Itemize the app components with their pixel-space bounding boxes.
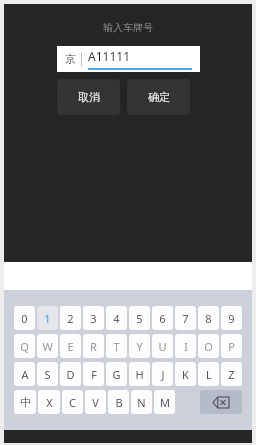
button[interactable]: 中 — [14, 390, 36, 414]
button[interactable]: E — [60, 334, 81, 358]
staticText: P — [228, 339, 235, 354]
button[interactable]: 7 — [175, 306, 196, 330]
staticText: L — [206, 367, 212, 382]
staticText: S — [44, 367, 51, 382]
button[interactable]: T — [106, 334, 127, 358]
staticText: 输入车牌号 — [103, 21, 153, 34]
staticText: E — [67, 339, 74, 354]
staticText: 确定 — [148, 90, 170, 104]
staticText: H — [135, 367, 144, 382]
staticText: V — [92, 395, 99, 410]
staticText: Y — [136, 339, 143, 354]
button[interactable]: 6 — [152, 306, 173, 330]
staticText: 9 — [228, 311, 235, 326]
button[interactable]: 4 — [106, 306, 127, 330]
staticText: 2 — [67, 311, 74, 326]
button[interactable]: 3 — [83, 306, 104, 330]
staticText: 1 — [44, 311, 51, 326]
button[interactable]: W — [37, 334, 58, 358]
button[interactable]: I — [175, 334, 196, 358]
button[interactable]: K — [175, 362, 196, 386]
staticText: C — [69, 395, 76, 410]
button[interactable]: M — [154, 390, 175, 414]
staticText: I — [184, 339, 188, 354]
staticText: R — [90, 339, 97, 354]
staticText: 5 — [136, 311, 143, 326]
button[interactable]: J — [152, 362, 173, 386]
button[interactable]: G — [106, 362, 127, 386]
button[interactable]: P — [221, 334, 242, 358]
staticText: 4 — [113, 311, 120, 326]
staticText: M — [160, 395, 170, 410]
staticText: T — [113, 339, 120, 354]
staticText: Z — [228, 367, 235, 382]
button[interactable]: N — [131, 390, 152, 414]
staticText: D — [66, 367, 75, 382]
staticText: 0 — [21, 311, 28, 326]
button[interactable]: C — [62, 390, 83, 414]
staticText: 7 — [182, 311, 189, 326]
button[interactable]: H — [129, 362, 150, 386]
staticText: X — [46, 395, 53, 410]
button[interactable]: 取消 — [57, 79, 120, 115]
button[interactable]: 0 — [14, 306, 35, 330]
button[interactable]: L — [198, 362, 219, 386]
staticText: W — [42, 339, 53, 354]
staticText: 中 — [20, 395, 31, 409]
button[interactable]: Y — [129, 334, 150, 358]
staticText: G — [112, 367, 121, 382]
button[interactable]: 8 — [198, 306, 219, 330]
button[interactable]: 京 — [57, 46, 200, 72]
staticText: A — [21, 367, 29, 382]
staticText: U — [158, 339, 167, 354]
button[interactable]: F — [83, 362, 104, 386]
button[interactable]: S — [37, 362, 58, 386]
staticText: Q — [20, 339, 29, 354]
button[interactable]: Backspace — [200, 390, 242, 414]
button[interactable]: Z — [221, 362, 242, 386]
button[interactable]: V — [85, 390, 106, 414]
staticText: A11111 — [88, 48, 130, 64]
button[interactable]: O — [198, 334, 219, 358]
button[interactable]: 1 — [37, 306, 58, 330]
button[interactable]: R — [83, 334, 104, 358]
staticText: 3 — [90, 311, 97, 326]
staticText: K — [182, 367, 189, 382]
button[interactable]: X — [38, 390, 60, 414]
staticText: 取消 — [78, 90, 100, 104]
staticText: 京 — [65, 52, 76, 66]
staticText: 8 — [205, 311, 212, 326]
button[interactable]: 5 — [129, 306, 150, 330]
staticText: F — [91, 367, 97, 382]
staticText: N — [137, 395, 146, 410]
button[interactable]: B — [108, 390, 129, 414]
button[interactable]: 9 — [221, 306, 242, 330]
staticText: O — [204, 339, 213, 354]
staticText: B — [115, 395, 123, 410]
staticText: 6 — [159, 311, 166, 326]
button[interactable]: Q — [14, 334, 35, 358]
button[interactable]: A — [14, 362, 35, 386]
staticText: J — [161, 367, 165, 382]
button[interactable]: 确定 — [127, 79, 190, 115]
button[interactable]: D — [60, 362, 81, 386]
button[interactable]: 2 — [60, 306, 81, 330]
button[interactable]: U — [152, 334, 173, 358]
